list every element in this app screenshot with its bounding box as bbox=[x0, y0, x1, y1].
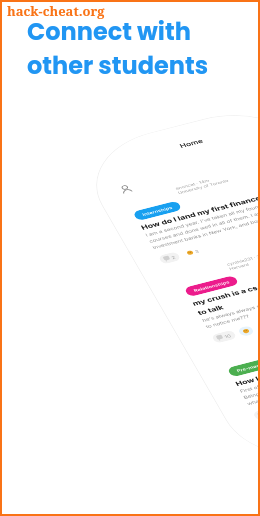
staticText: hack-cheat.org bbox=[7, 2, 105, 20]
button[interactable]: Internships bbox=[132, 200, 182, 221]
staticText: other students bbox=[27, 49, 209, 83]
staticText: he's always always studying and never se… bbox=[201, 286, 260, 329]
staticText: University of Toronto bbox=[177, 178, 230, 195]
staticText: cynthia231 · 2h bbox=[226, 253, 260, 267]
button[interactable]: 7 bbox=[252, 407, 260, 421]
staticText: I am a second year. I've taken all my fo… bbox=[144, 194, 260, 250]
staticText: 10 bbox=[223, 333, 232, 339]
staticText: How do I land my first finance internshi… bbox=[139, 182, 260, 231]
staticText: Connect with bbox=[27, 15, 191, 49]
staticText: Home bbox=[178, 137, 205, 149]
staticText: Internships bbox=[141, 205, 174, 217]
button[interactable]: Relationships bbox=[184, 275, 239, 297]
button[interactable] bbox=[237, 325, 255, 337]
button[interactable]: Pre-med bbox=[227, 358, 260, 377]
staticText: Harvard bbox=[228, 262, 250, 272]
staticText: 2 bbox=[170, 255, 176, 260]
button[interactable]: 10 bbox=[211, 330, 237, 344]
button[interactable]: 2 bbox=[158, 251, 181, 265]
staticText: First of all, congrats on making it this… bbox=[239, 361, 260, 407]
button[interactable]: 3 bbox=[181, 245, 205, 259]
staticText: Relationships bbox=[192, 279, 230, 293]
staticText: 3 bbox=[194, 249, 200, 254]
staticText: How long should i study for the mcat? bbox=[234, 342, 260, 387]
staticText: my crush is a cs major and i want to tal… bbox=[191, 266, 260, 316]
staticText: Pre-med bbox=[236, 363, 260, 373]
staticText: anoncat · 14m bbox=[175, 178, 211, 191]
